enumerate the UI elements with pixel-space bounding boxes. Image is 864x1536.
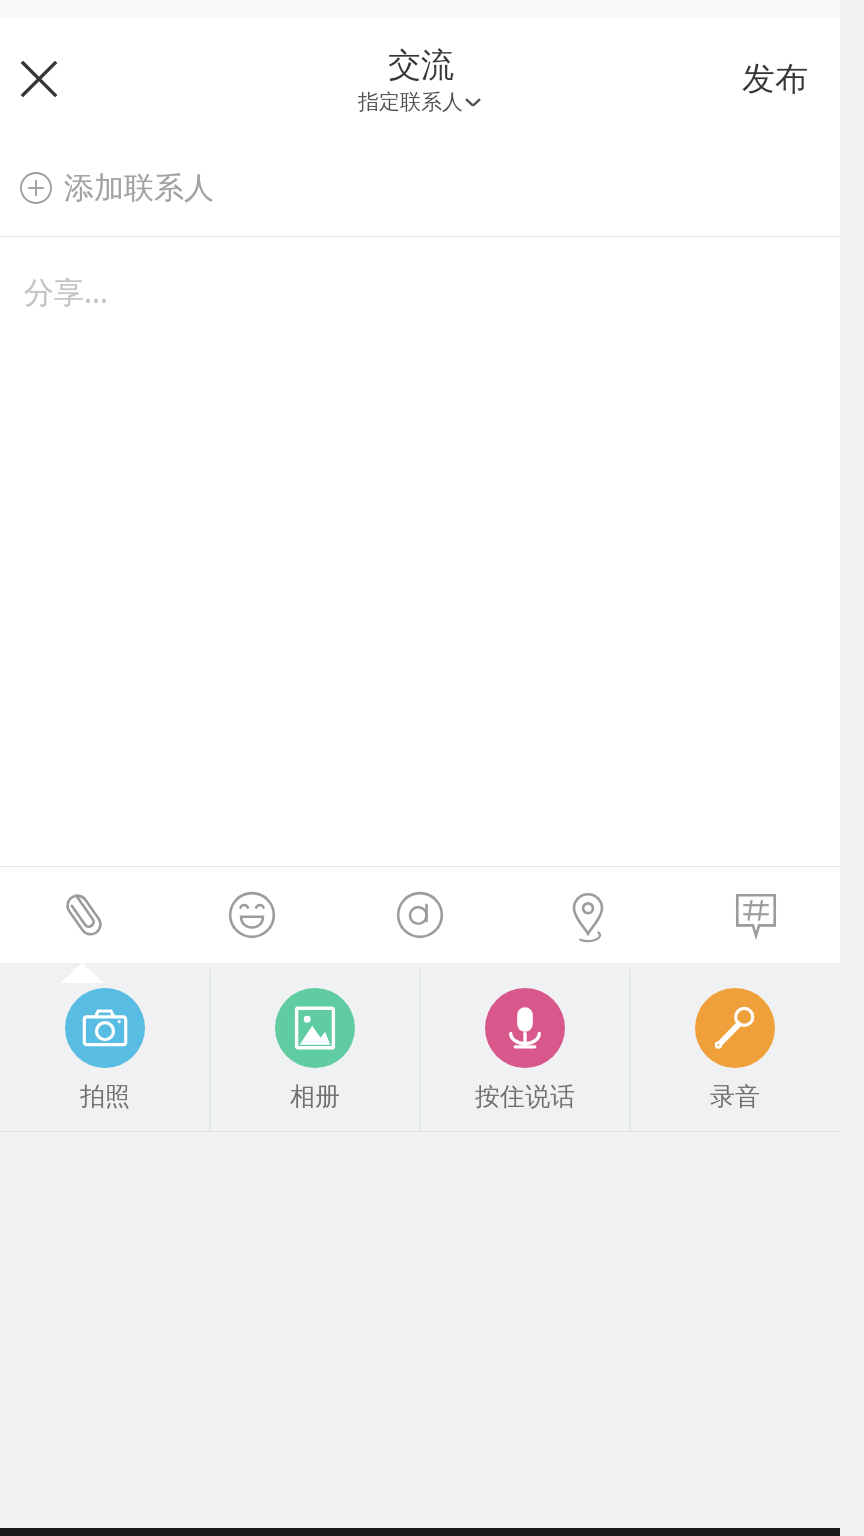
staticText: 拍照 [80, 1081, 130, 1112]
button[interactable]: 按住说话 [420, 963, 630, 1131]
staticText: 相册 [290, 1081, 340, 1112]
button[interactable]: 交流 [358, 44, 483, 115]
staticText: 分享... [24, 271, 109, 312]
button[interactable]: Mention [336, 867, 504, 963]
staticText: 发布 [742, 58, 808, 100]
button[interactable]: Topic [672, 867, 840, 963]
staticText: 按住说话 [475, 1081, 575, 1112]
button[interactable]: Attach [0, 867, 168, 963]
button[interactable]: 添加联系人 [0, 140, 840, 236]
button[interactable]: Location [504, 867, 672, 963]
button[interactable]: 拍照 [0, 963, 210, 1131]
button[interactable]: Close [4, 44, 74, 114]
staticText: 录音 [710, 1081, 760, 1112]
button[interactable]: 发布 [734, 50, 816, 108]
button[interactable]: 相册 [210, 963, 420, 1131]
staticText: 交流 [388, 44, 454, 86]
staticText: 添加联系人 [64, 169, 214, 207]
staticText: 指定联系人 [358, 89, 463, 115]
button[interactable]: 录音 [630, 963, 840, 1131]
button[interactable]: Emoji [168, 867, 336, 963]
